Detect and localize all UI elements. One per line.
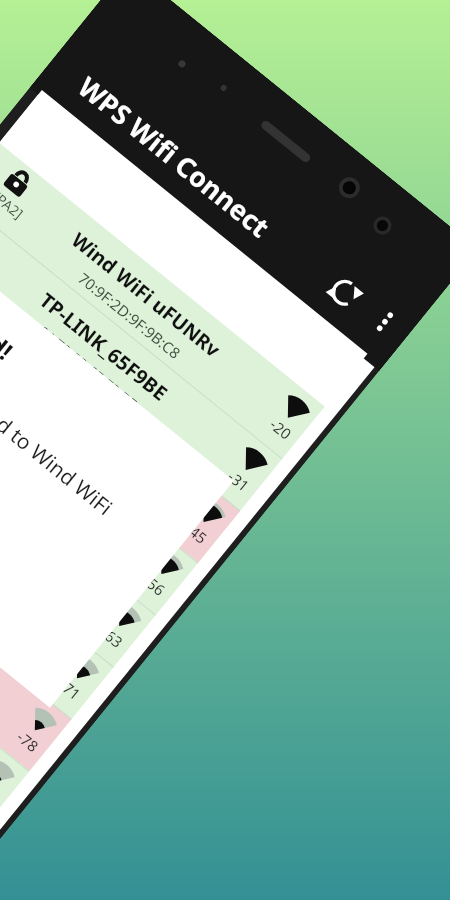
staticText: [WPA2] [0,178,27,223]
staticText: -45 [182,518,211,548]
staticText: You are connected to Wind WiFi uFUNRv [0,304,162,580]
staticText: 70:9F:2D:9F:9B:C8 [74,268,185,363]
staticText: -56 [139,570,169,600]
staticText: TP-LINK_65F9BE [34,287,173,406]
staticText: WPS Wifi Connect [71,68,278,245]
button[interactable]: [WPA2] [0,195,282,511]
staticText: Wind WiFi uFUNRv [66,226,226,363]
button[interactable]: [WPA2] [0,143,325,459]
button[interactable]: [WPA2] [0,507,29,823]
staticText: -78 [13,727,43,756]
button[interactable]: [WPA2] [0,403,114,719]
staticText: Now you should have the [0,390,1,570]
button[interactable]: Refresh [318,266,371,319]
button[interactable]: [WPA2] [0,299,198,615]
staticText: -71 [55,674,85,704]
staticText: 00:1D:8B:4C:1E:33 [0,371,101,468]
button[interactable]: More options [366,303,404,341]
staticText: 64:70:02:65:F9:BE [33,321,142,414]
staticText: -20 [266,414,296,444]
button[interactable]: [WPA2] [0,351,156,667]
staticText: Connected! [0,256,20,367]
staticText: TIM-31229945 [0,449,39,556]
staticText: Vodafone-25814773 [0,379,103,522]
staticText: -63 [97,622,127,652]
button[interactable]: [WPA2] [0,247,240,563]
button[interactable]: [WPA2] [0,455,72,771]
staticText: -31 [224,466,253,496]
staticText: 11:22:A3:44:55:66 [0,424,57,518]
staticText: FASTWEB-8A4C1E [0,335,136,463]
